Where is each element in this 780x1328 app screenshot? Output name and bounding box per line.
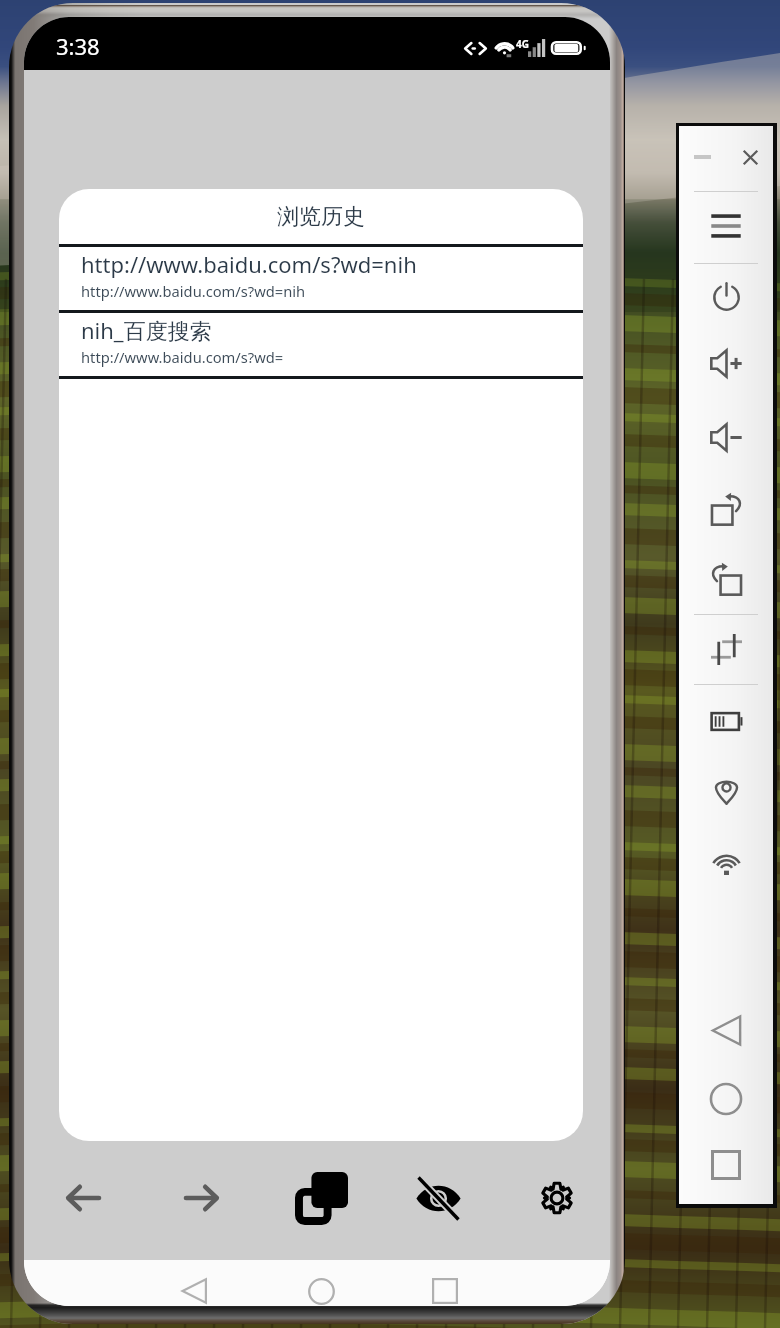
button[interactable]: Cellular (703, 836, 749, 882)
button[interactable]: Home (305, 1275, 337, 1306)
button[interactable]: nih_百度搜索 (59, 313, 583, 376)
staticText: 3:38 (56, 31, 100, 61)
button[interactable]: Incognito (409, 1169, 467, 1227)
button[interactable]: Tabs (292, 1169, 350, 1227)
button[interactable]: Volume down (703, 414, 749, 460)
button[interactable]: Minimize (686, 143, 718, 171)
button[interactable]: Recents (429, 1275, 461, 1306)
button[interactable]: Battery (703, 698, 749, 744)
button[interactable]: http://www.baidu.com/s?wd=nih (59, 247, 583, 310)
button[interactable]: Power (703, 273, 749, 319)
button[interactable]: Location (703, 767, 749, 813)
staticText: 浏览历史 (277, 203, 365, 231)
staticText: nih_百度搜索 (81, 315, 212, 345)
staticText: http://www.baidu.com/s?wd=nih (81, 281, 306, 301)
button[interactable]: Back (54, 1169, 112, 1227)
button[interactable]: Home (703, 1076, 749, 1122)
button[interactable]: Volume up (703, 340, 749, 386)
staticText: 4G (516, 37, 529, 51)
button[interactable]: Screenshot (703, 626, 749, 672)
button[interactable]: Back (178, 1275, 210, 1306)
button[interactable]: Recents (703, 1142, 749, 1188)
button[interactable]: Forward (173, 1169, 231, 1227)
button[interactable]: Close (736, 143, 764, 171)
button[interactable]: Back (703, 1007, 749, 1053)
button[interactable]: Settings (528, 1169, 586, 1227)
staticText: http://www.baidu.com/s?wd=nih (81, 249, 417, 279)
button[interactable]: Rotate left (703, 485, 749, 531)
button[interactable]: Rotate right (703, 555, 749, 601)
staticText: http://www.baidu.com/s?wd= (81, 347, 284, 367)
button[interactable]: Menu (703, 203, 749, 249)
